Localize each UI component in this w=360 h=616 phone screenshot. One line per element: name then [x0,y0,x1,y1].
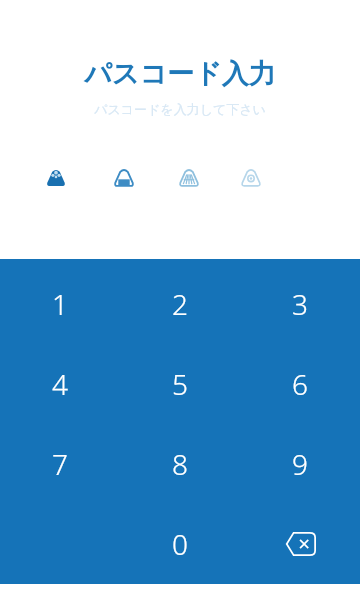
staticText: 5 [172,365,188,403]
button[interactable]: 2 [120,264,240,344]
button[interactable]: 8 [120,424,240,504]
button[interactable]: 1 [0,264,120,344]
staticText: 6 [292,365,308,403]
button[interactable]: 0 [120,504,240,584]
other: Passcode digit 2 [109,163,139,193]
button[interactable]: 9 [240,424,360,504]
button[interactable]: 3 [240,264,360,344]
other: Passcode digit 4 [236,163,266,193]
staticText: パスコードを入力して下さい [94,101,266,117]
staticText: 4 [52,365,68,403]
button[interactable]: 6 [240,344,360,424]
other: Passcode digit 1 entered [41,163,71,193]
other: Passcode digit 3 [174,163,204,193]
button[interactable]: Backspace [240,504,360,584]
staticText: 7 [52,445,68,483]
staticText: 9 [292,445,308,483]
staticText: 3 [292,285,308,323]
staticText: 1 [52,285,68,323]
button[interactable]: 5 [120,344,240,424]
staticText: 0 [172,525,188,563]
button[interactable]: 7 [0,424,120,504]
button[interactable]: 4 [0,344,120,424]
staticText: 2 [172,285,188,323]
staticText: パスコード入力 [84,57,276,91]
staticText: 8 [172,445,188,483]
